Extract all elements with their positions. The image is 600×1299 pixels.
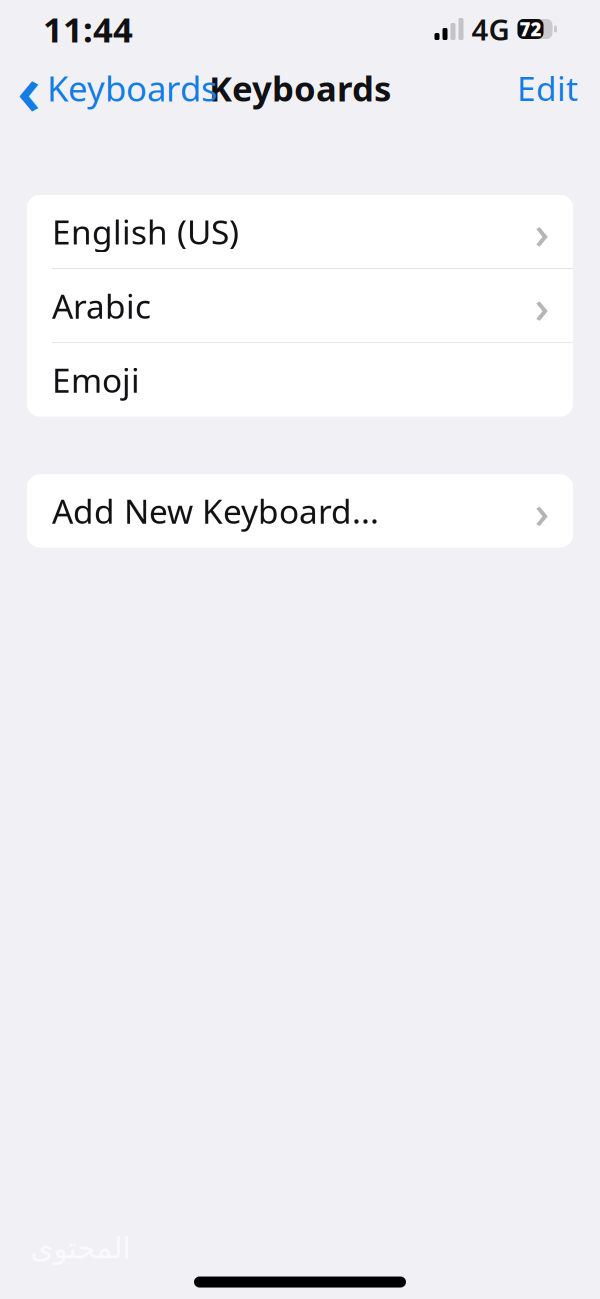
staticText: Arabic	[52, 284, 151, 328]
staticText: ›	[534, 201, 549, 262]
staticText: Add New Keyboard...	[52, 489, 379, 533]
button[interactable]: Arabic	[27, 269, 573, 342]
staticText: Emoji	[52, 358, 140, 402]
button[interactable]: Edit	[513, 60, 582, 116]
button[interactable]: English (US)	[27, 195, 573, 268]
button[interactable]: Add New Keyboard...	[27, 474, 573, 547]
staticText: Keyboards	[209, 65, 391, 111]
staticText: المحتوى	[30, 1231, 130, 1265]
staticText: ‹	[17, 42, 41, 134]
staticText: Edit	[517, 66, 578, 110]
staticText: 4G	[471, 9, 509, 48]
button[interactable]: Emoji	[27, 343, 573, 416]
staticText: ›	[534, 481, 549, 541]
staticText: English (US)	[52, 209, 239, 254]
staticText: 72	[519, 17, 541, 41]
button[interactable]: ‹	[18, 59, 218, 117]
staticText: 11:44	[43, 6, 133, 52]
staticText: Keyboards	[47, 65, 218, 111]
staticText: ›	[534, 276, 549, 336]
